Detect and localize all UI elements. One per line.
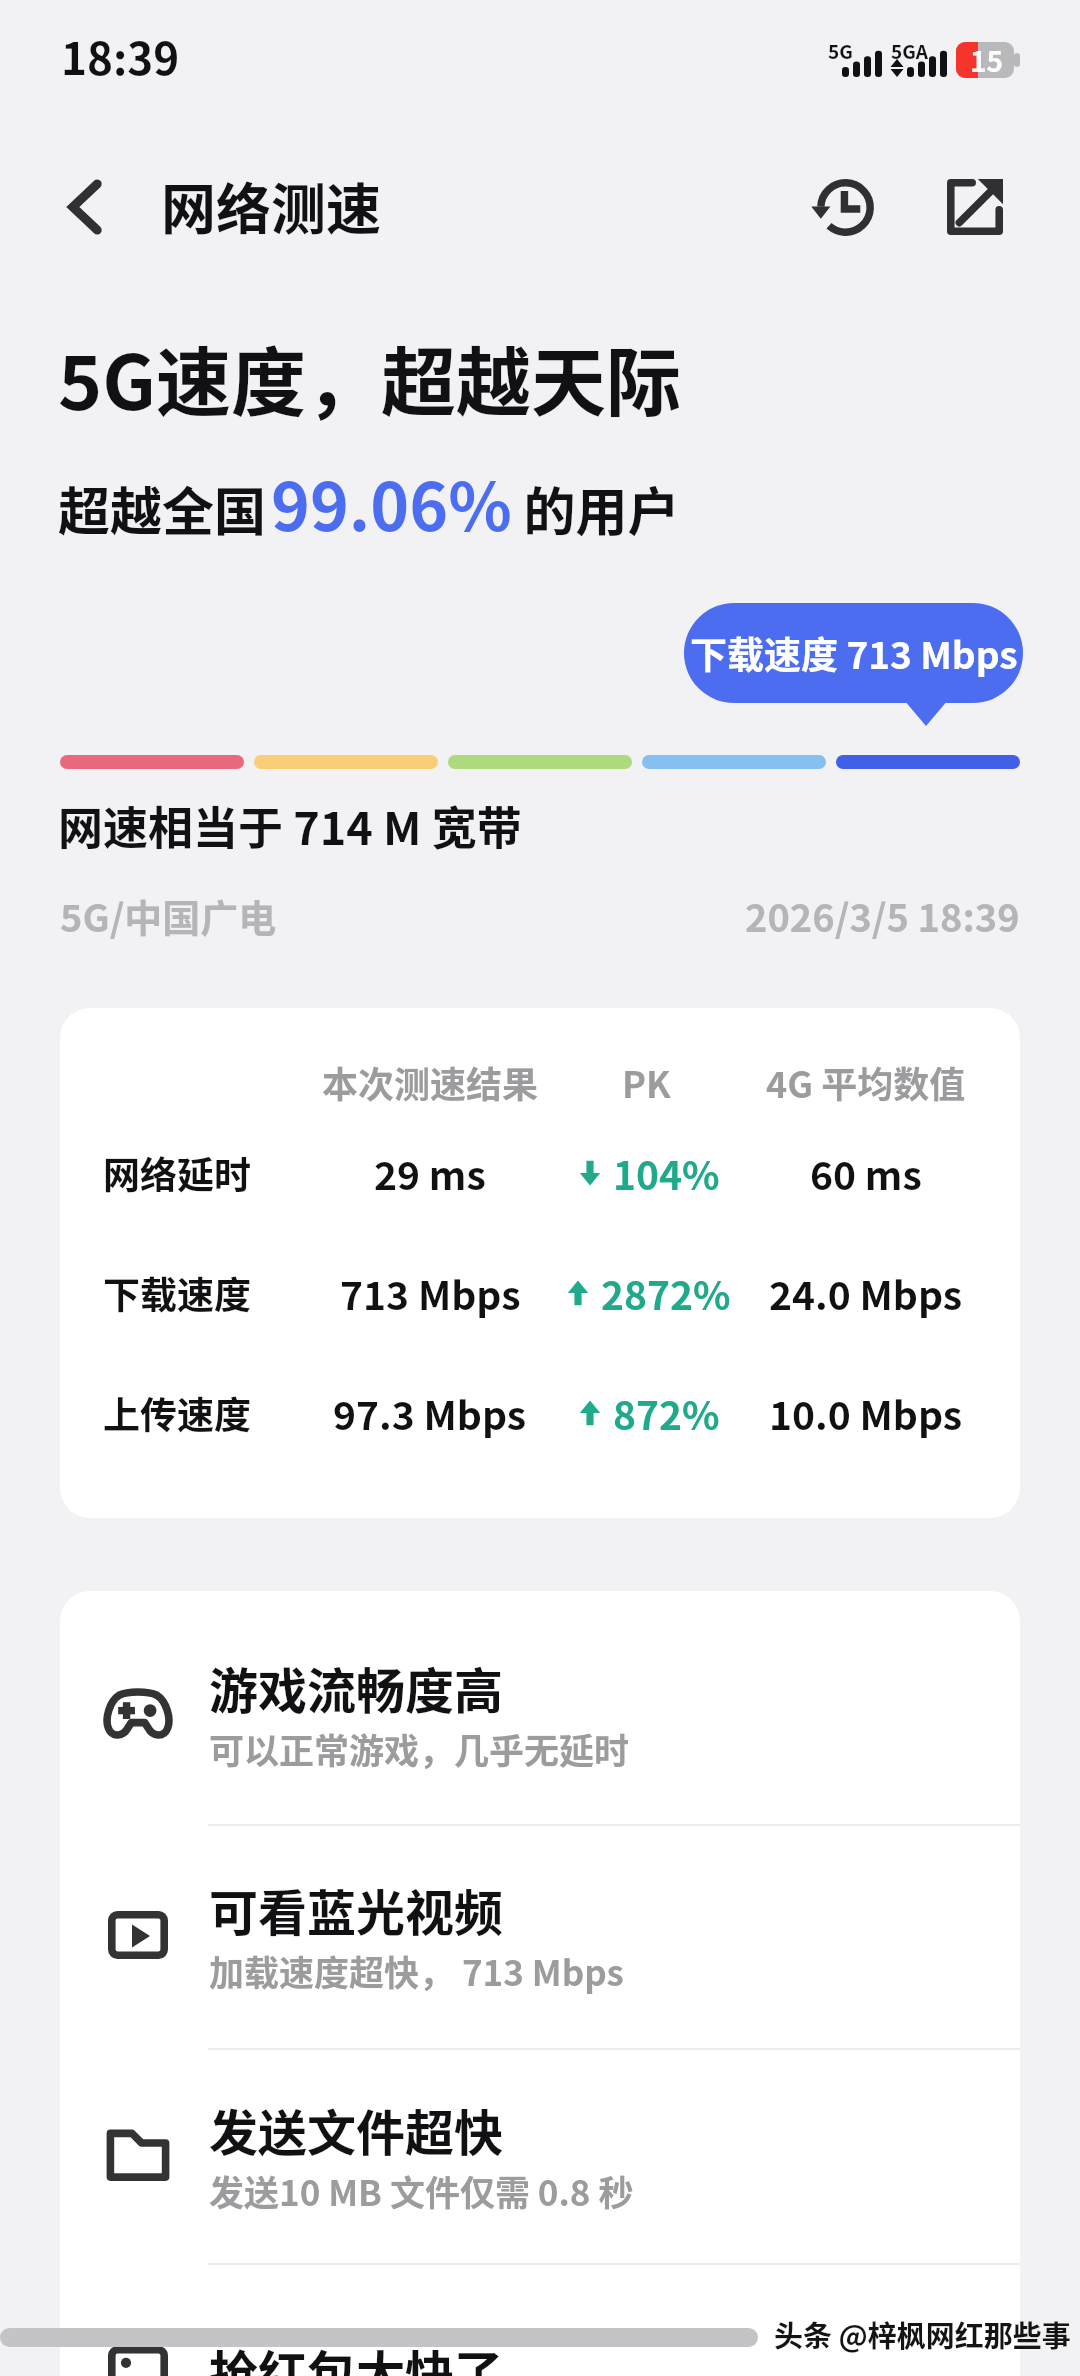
staticText: 抢红包太快了 (209, 2335, 504, 2376)
staticText: 网络延时 (103, 1146, 251, 1200)
staticText: 5G (828, 37, 853, 65)
button[interactable]: 可看蓝光视频 (60, 1829, 1020, 2041)
staticText: 加载速度超快， 713 Mbps (209, 1945, 624, 1996)
staticText: 2872% (601, 1265, 731, 1321)
staticText: 上传速度 (103, 1386, 251, 1440)
button[interactable]: 发送文件超快 (60, 2049, 1020, 2261)
staticText: 下载速度 (103, 1266, 251, 1320)
staticText: 超越全国 99.06% 的用户 (58, 454, 680, 550)
staticText: 15 (970, 40, 1004, 81)
staticText: 网速相当于 714 M 宽带 (58, 793, 522, 858)
staticText: 29 ms (374, 1145, 486, 1201)
button[interactable]: History (799, 161, 891, 253)
staticText: 可看蓝光视频 (209, 1874, 504, 1945)
staticText: 5G速度，超越天际 (58, 323, 682, 432)
staticText: 发送10 MB 文件仅需 0.8 秒 (209, 2165, 634, 2216)
staticText: 60 ms (810, 1145, 922, 1201)
button[interactable]: 下载速度 713 Mbps (684, 603, 1023, 703)
button[interactable]: Back (43, 165, 127, 249)
staticText: 97.3 Mbps (333, 1385, 527, 1441)
staticText: 18:39 (61, 24, 180, 88)
staticText: 游戏流畅度高 (209, 1652, 504, 1723)
button[interactable]: 抢红包太快了 (60, 2299, 1020, 2376)
staticText: 下载速度 713 Mbps (690, 626, 1018, 680)
button[interactable]: 游戏流畅度高 (60, 1607, 1020, 1819)
staticText: 10.0 Mbps (769, 1385, 963, 1441)
staticText: 24.0 Mbps (769, 1265, 963, 1321)
staticText: 5G/中国广电 (60, 888, 277, 943)
staticText: 4G 平均数值 (766, 1056, 966, 1108)
staticText: 5GA (891, 37, 928, 65)
button[interactable]: Share (929, 161, 1021, 253)
staticText: 本次测速结果 (322, 1056, 539, 1108)
staticText: 2026/3/5 18:39 (745, 888, 1020, 943)
staticText: 头条 @梓枫网红那些事 (774, 2313, 1071, 2355)
staticText: 104% (613, 1145, 720, 1201)
staticText: 713 Mbps (340, 1265, 521, 1321)
staticText: 发送文件超快 (209, 2094, 504, 2165)
staticText: 网络测速 (161, 165, 382, 245)
staticText: 可以正常游戏，几乎无延时 (209, 1723, 630, 1774)
staticText: PK (622, 1056, 671, 1108)
staticText: 872% (613, 1385, 720, 1441)
